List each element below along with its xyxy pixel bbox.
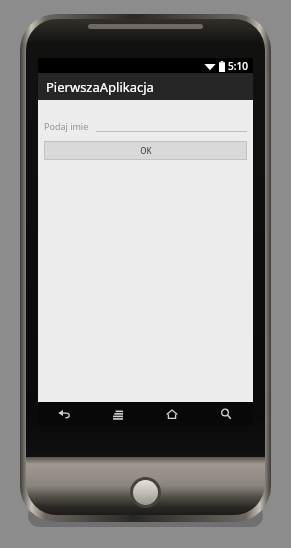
button[interactable]: OK <box>45 142 246 159</box>
staticText: Podaj imie <box>44 120 89 132</box>
button[interactable]: Menu <box>91 402 145 426</box>
button[interactable]: Search <box>199 402 253 426</box>
button[interactable]: Back <box>38 402 91 426</box>
staticText: 5:10 <box>228 59 248 73</box>
button[interactable]: Podaj imie <box>44 117 247 132</box>
staticText: OK <box>140 145 152 156</box>
staticText: PierwszaAplikacja <box>46 78 154 96</box>
button[interactable]: Home <box>145 402 199 426</box>
